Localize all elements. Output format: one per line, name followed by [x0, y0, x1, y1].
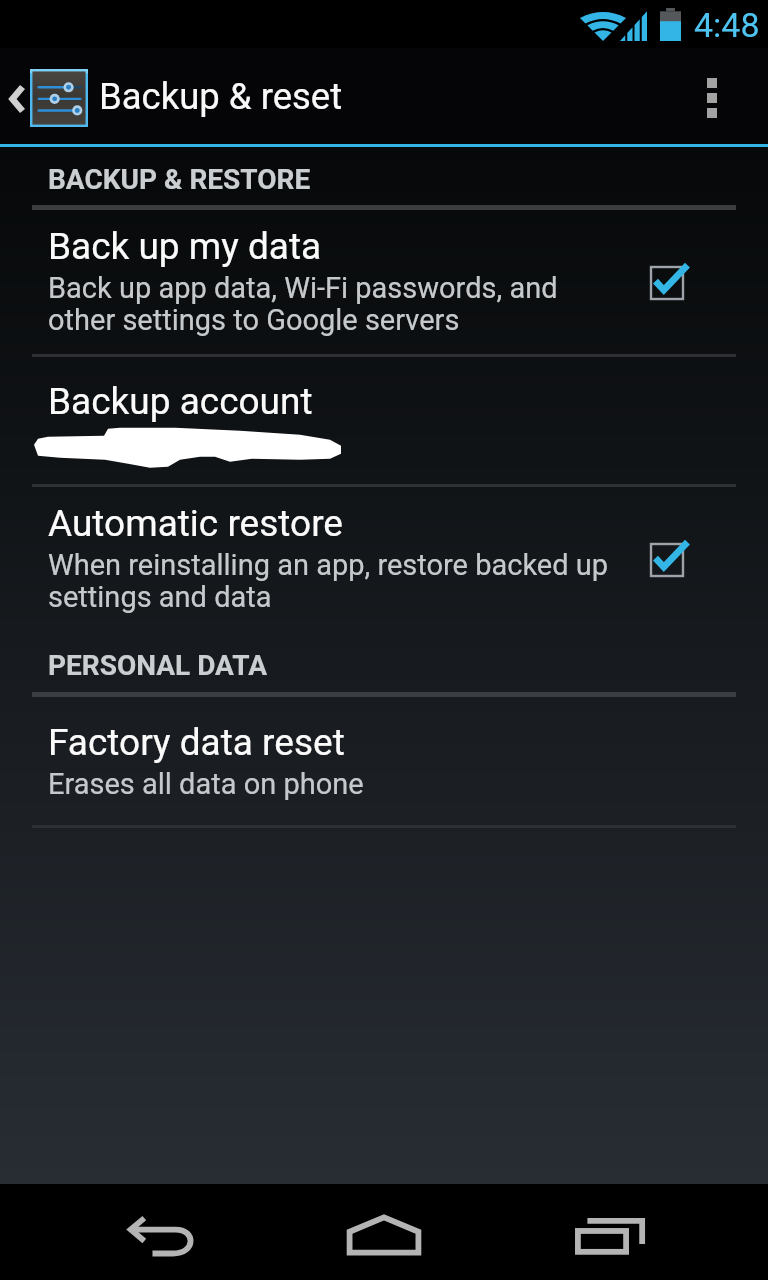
button: BACKUP & RESTORE [0, 163, 768, 196]
button[interactable]: Back up my data [0, 225, 768, 337]
staticText: PERSONAL DATA [48, 649, 267, 682]
button[interactable]: Recent apps [547, 1184, 675, 1280]
staticText: Automatic restore [48, 502, 343, 545]
staticText: When reinstalling an app, restore backed… [48, 548, 609, 614]
button[interactable]: Toggle setting [634, 246, 704, 312]
other: Battery [660, 8, 681, 41]
staticText: Back up app data, Wi-Fi passwords, and o… [48, 271, 558, 337]
staticText: Backup account [48, 380, 313, 423]
button[interactable]: Toggle setting [634, 523, 704, 589]
button[interactable]: Home [320, 1184, 448, 1280]
button[interactable]: Navigate up [0, 48, 367, 144]
staticText: Erases all data on phone [48, 767, 364, 801]
button[interactable]: Back [96, 1184, 224, 1280]
button[interactable]: Backup account [0, 380, 768, 471]
button[interactable]: Automatic restore [0, 502, 768, 614]
other: Mobile signal [620, 9, 649, 41]
staticText: Factory data reset [48, 721, 345, 764]
staticText: Back up my data [48, 225, 322, 268]
other: Wi-Fi signal [583, 9, 623, 41]
staticText: 4:48 [694, 5, 760, 45]
staticText: Backup & reset [99, 75, 343, 118]
staticText: BACKUP & RESTORE [48, 163, 311, 196]
button[interactable]: More options [656, 48, 768, 144]
button[interactable]: Factory data reset [0, 721, 768, 801]
button: PERSONAL DATA [0, 649, 768, 682]
